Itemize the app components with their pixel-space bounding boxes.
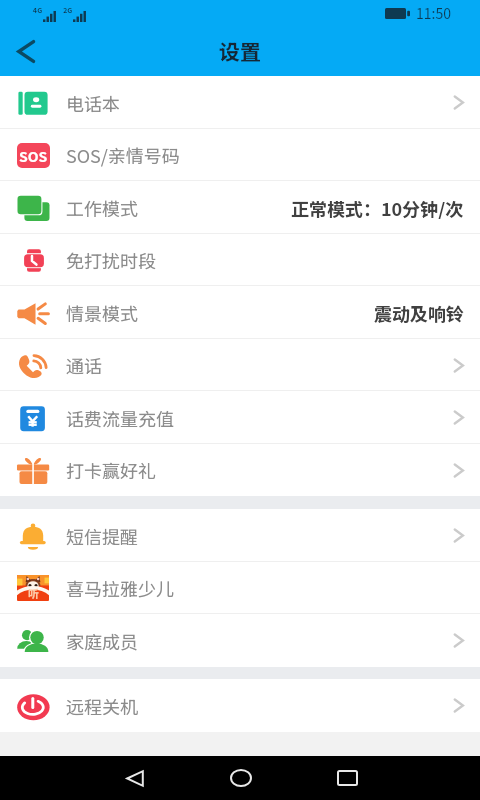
button[interactable]: Back — [0, 26, 52, 76]
button[interactable]: Home — [214, 756, 268, 800]
staticText: 话费流量充值 — [66, 405, 174, 431]
staticText: SOS/亲情号码 — [66, 142, 180, 168]
button[interactable]: 话费流量充值 — [0, 391, 480, 444]
staticText: 短信提醒 — [66, 523, 138, 549]
button[interactable]: Recents — [320, 756, 374, 800]
staticText: 电话本 — [66, 90, 120, 116]
button[interactable]: 听 — [0, 562, 480, 614]
button[interactable]: 情景模式 — [0, 286, 480, 339]
staticText: 4G — [33, 5, 43, 15]
staticText: 11:50 — [416, 3, 451, 23]
staticText: 情景模式 — [66, 300, 138, 326]
staticText: 正常模式：10分钟/次 — [291, 195, 464, 221]
staticText: 免打扰时段 — [66, 247, 156, 273]
button[interactable]: 家庭成员 — [0, 614, 480, 667]
button[interactable]: SOS — [0, 129, 480, 181]
staticText: 工作模式 — [66, 195, 138, 221]
button[interactable]: 工作模式 — [0, 181, 480, 234]
staticText: 打卡赢好礼 — [66, 457, 156, 483]
button[interactable]: Back — [108, 756, 162, 800]
staticText: 设置 — [219, 36, 261, 66]
staticText: 喜马拉雅少儿 — [66, 575, 174, 601]
button[interactable]: 打卡赢好礼 — [0, 444, 480, 496]
button[interactable]: 电话本 — [0, 76, 480, 129]
staticText: 2G — [63, 5, 73, 15]
button[interactable]: 免打扰时段 — [0, 234, 480, 286]
staticText: 震动及响铃 — [374, 300, 464, 326]
staticText: 家庭成员 — [66, 628, 138, 654]
staticText: 通话 — [66, 352, 102, 378]
button[interactable]: 远程关机 — [0, 679, 480, 732]
staticText: 远程关机 — [66, 693, 138, 719]
staticText: 听 — [28, 585, 39, 601]
staticText: SOS — [19, 146, 48, 166]
button[interactable]: 通话 — [0, 339, 480, 391]
button[interactable]: 短信提醒 — [0, 509, 480, 562]
